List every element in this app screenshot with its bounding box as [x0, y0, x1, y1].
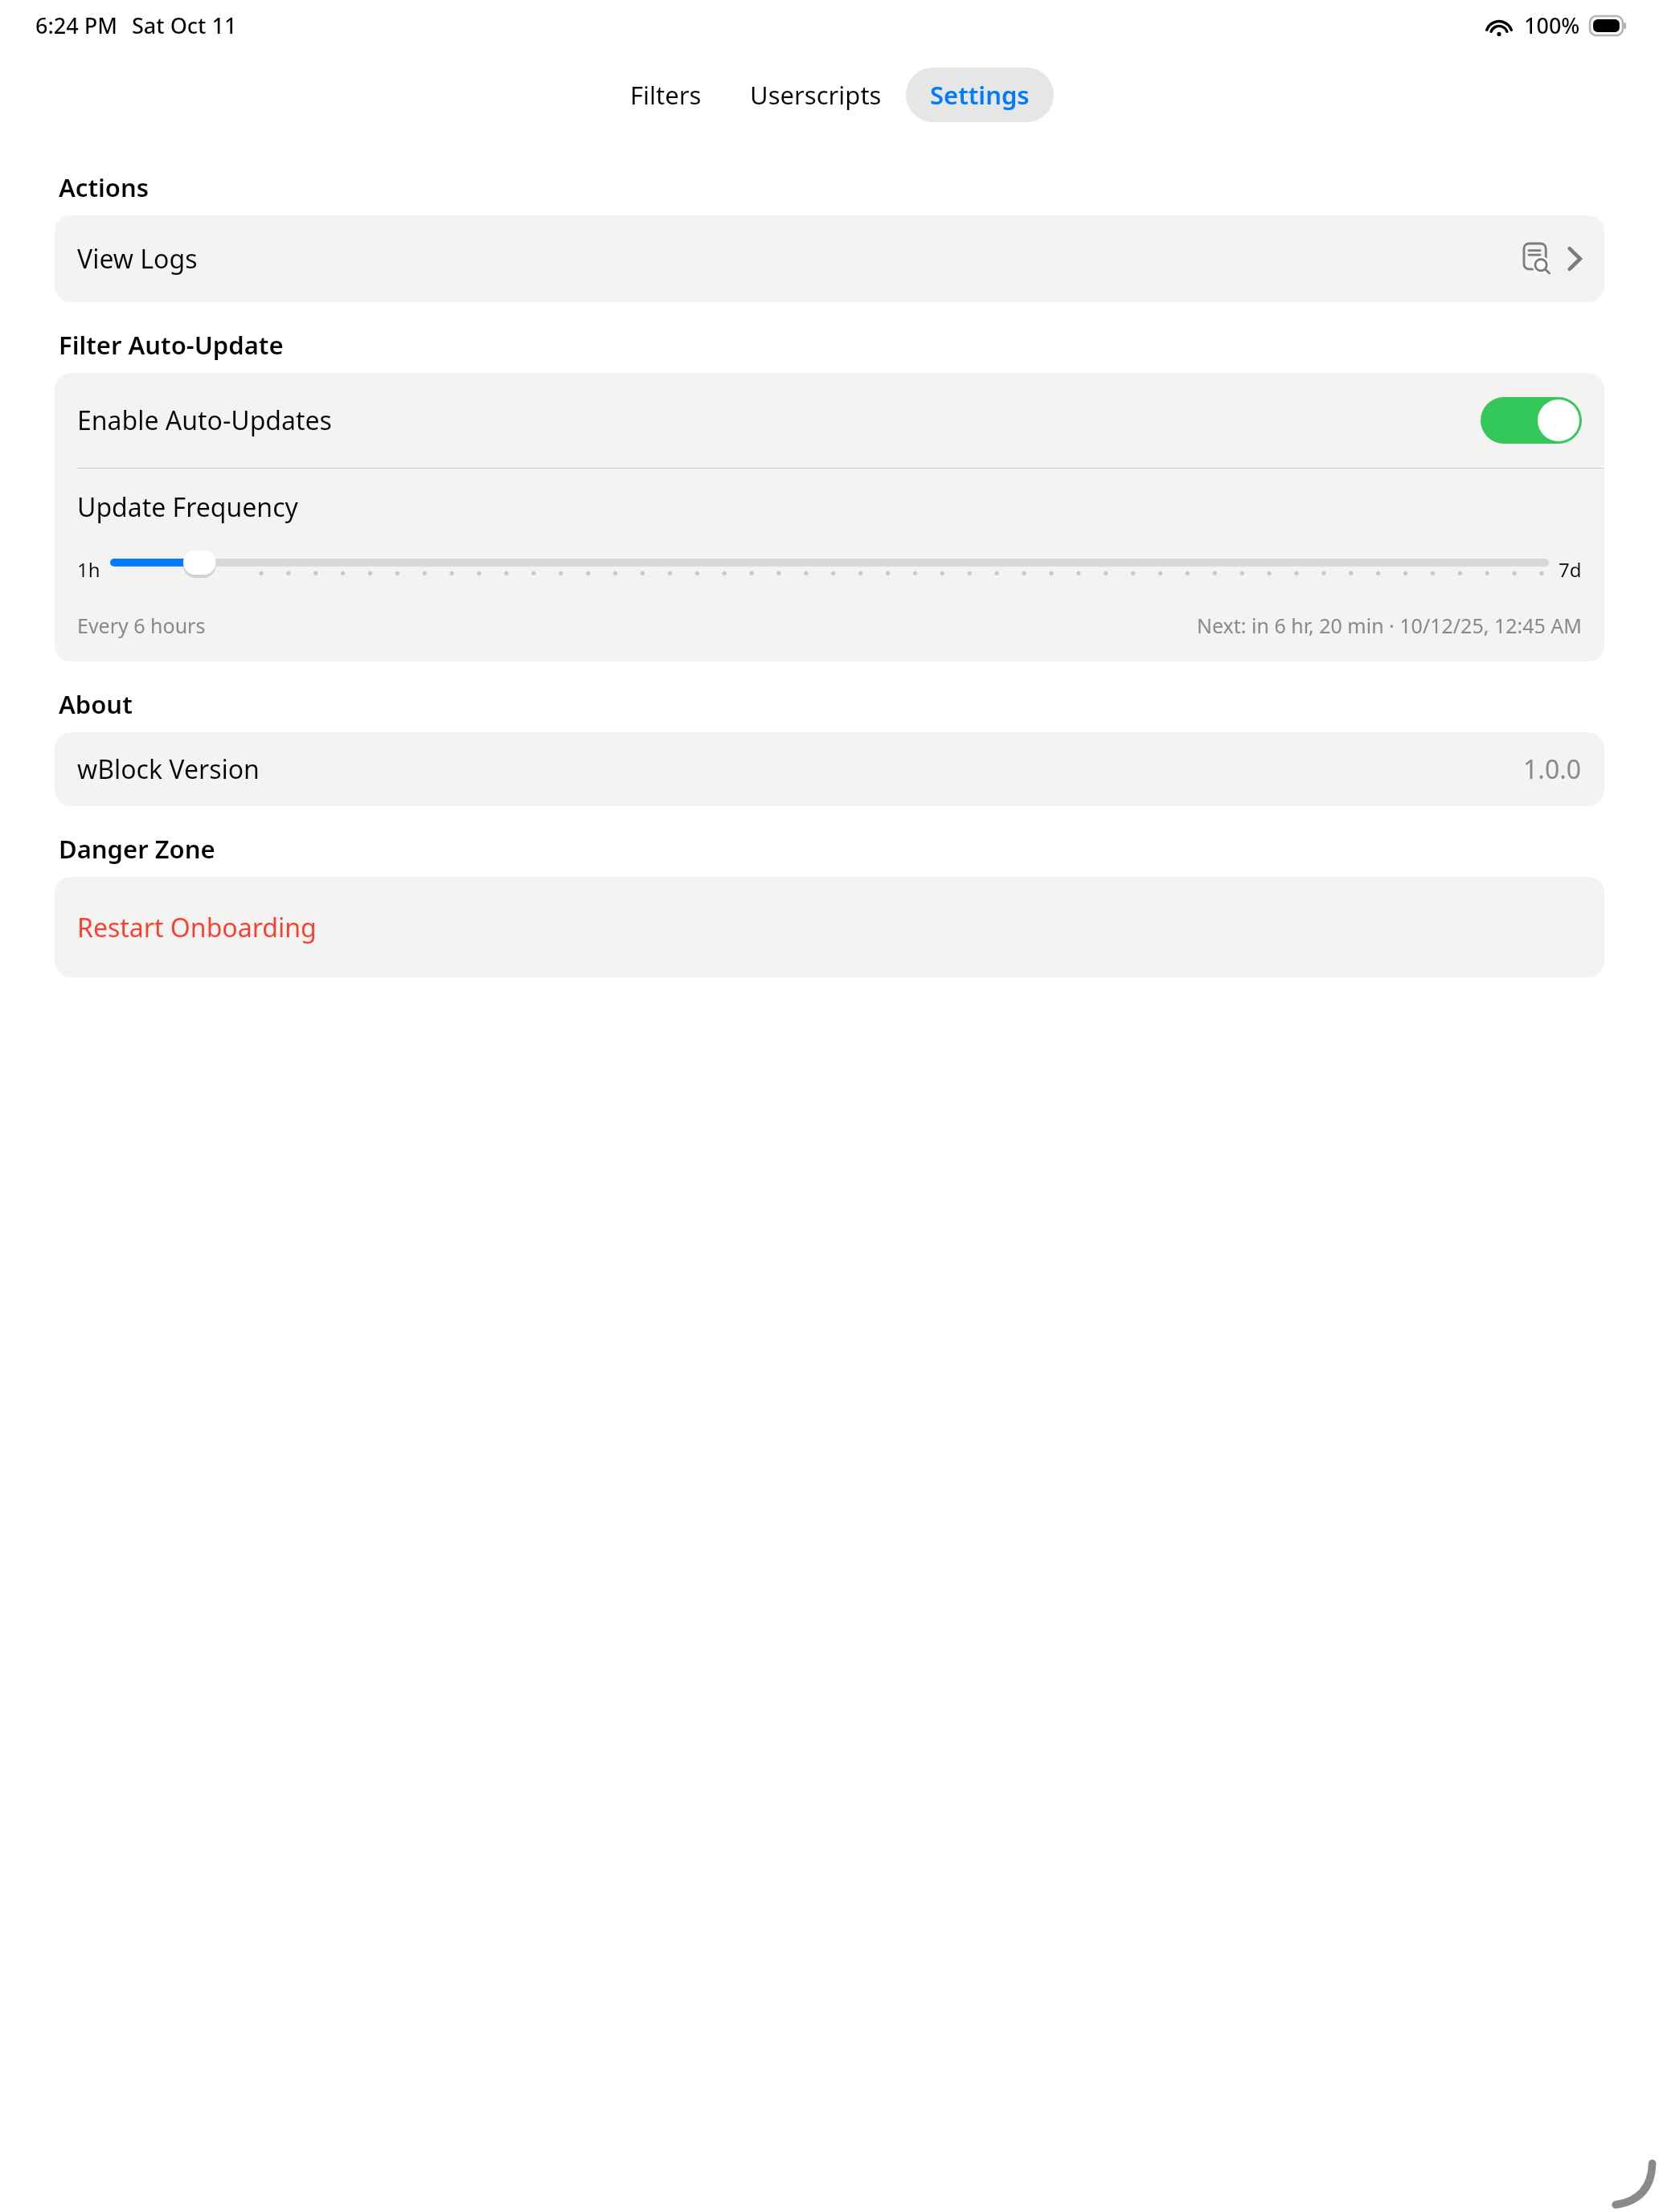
button[interactable]: Update frequency slider [110, 546, 1549, 592]
staticText: View Logs [77, 241, 198, 276]
staticText: Sat Oct 11 [132, 10, 237, 40]
staticText: Filter Auto-Update [59, 328, 284, 362]
other: View logs [1524, 244, 1551, 274]
staticText: Next: in 6 hr, 20 min · 10/12/25, 12:45 … [1197, 612, 1582, 639]
button[interactable]: wBlock Version [55, 732, 1604, 806]
button[interactable]: Enable auto updates [1481, 397, 1582, 444]
staticText: Restart Onboarding [77, 910, 317, 945]
staticText: Every 6 hours [77, 612, 206, 639]
staticText: Settings [930, 78, 1030, 112]
staticText: Actions [59, 170, 149, 204]
staticText: 1h [77, 556, 100, 583]
button[interactable]: Settings [906, 68, 1054, 122]
button[interactable]: Filters [606, 68, 726, 122]
staticText: 6:24 PM [35, 10, 117, 40]
staticText: About [59, 687, 133, 721]
staticText: Userscripts [750, 78, 882, 112]
staticText: 100% [1524, 10, 1580, 40]
staticText: Danger Zone [59, 832, 215, 866]
button[interactable]: Enable Auto-Updates [55, 373, 1604, 468]
staticText: Enable Auto-Updates [77, 403, 332, 438]
button[interactable]: Restart Onboarding [55, 877, 1604, 977]
staticText: 7d [1559, 556, 1582, 583]
staticText: Filters [630, 78, 702, 112]
staticText: Update Frequency [77, 490, 298, 525]
staticText: wBlock Version [77, 752, 260, 787]
button[interactable]: View Logs [55, 215, 1604, 302]
staticText: 1.0.0 [1523, 752, 1582, 787]
button[interactable]: Userscripts [726, 68, 906, 122]
